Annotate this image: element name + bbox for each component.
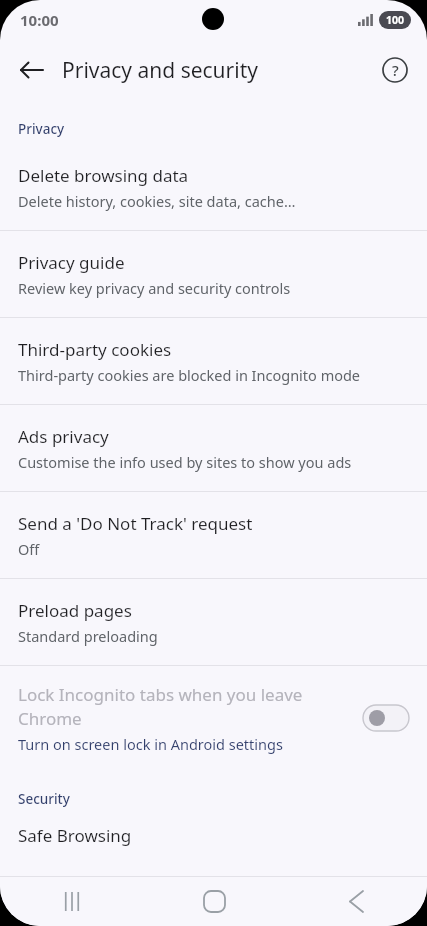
staticText: Ads privacy: [18, 425, 109, 448]
button[interactable]: Home: [143, 877, 285, 926]
button[interactable]: Help: [371, 46, 419, 94]
button[interactable]: Ads privacy: [0, 405, 427, 491]
button[interactable]: Delete browsing data: [0, 144, 427, 230]
button[interactable]: Lock Incognito tabs when you leave Chrom…: [0, 666, 427, 770]
button[interactable]: Back: [285, 877, 427, 926]
staticText: Turn on screen lock in Android settings: [18, 734, 283, 754]
button[interactable]: Send a 'Do Not Track' request: [0, 492, 427, 578]
staticText: Privacy guide: [18, 251, 125, 274]
button[interactable]: Privacy guide: [0, 231, 427, 317]
staticText: Review key privacy and security controls: [18, 278, 291, 298]
staticText: Standard preloading: [18, 626, 158, 646]
staticText: Safe Browsing: [18, 824, 132, 847]
button[interactable]: Back: [8, 46, 56, 94]
staticText: 10:00: [20, 10, 59, 30]
staticText: Security: [18, 790, 70, 808]
staticText: Preload pages: [18, 599, 132, 622]
staticText: Privacy: [18, 120, 65, 138]
staticText: Lock Incognito tabs when you leave Chrom…: [18, 683, 303, 730]
staticText: Privacy and security: [62, 56, 371, 85]
staticText: Send a 'Do Not Track' request: [18, 512, 253, 535]
staticText: 100: [386, 13, 405, 27]
button[interactable]: Recent apps: [0, 877, 143, 926]
button[interactable]: Safe Browsing: [0, 814, 427, 876]
staticText: Customise the info used by sites to show…: [18, 452, 352, 472]
staticText: ?: [392, 60, 399, 80]
staticText: Off: [18, 539, 40, 559]
button[interactable]: Lock Incognito tabs toggle: [363, 705, 409, 731]
staticText: Delete browsing data: [18, 164, 189, 187]
button[interactable]: Third-party cookies: [0, 318, 427, 404]
staticText: Third-party cookies: [18, 338, 172, 361]
button[interactable]: Preload pages: [0, 579, 427, 665]
staticText: Third-party cookies are blocked in Incog…: [18, 365, 361, 385]
staticText: Delete history, cookies, site data, cach…: [18, 191, 296, 211]
